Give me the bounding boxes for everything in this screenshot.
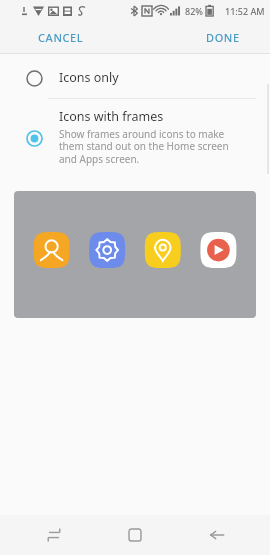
staticText: 82% [185, 5, 203, 17]
staticText: 11:52 AM [225, 5, 265, 17]
staticText: Show frames around icons to make them st… [59, 127, 229, 166]
button[interactable]: Back [189, 515, 245, 555]
button[interactable]: Icons only [0, 58, 270, 98]
button[interactable]: DONE [198, 25, 248, 50]
button[interactable]: Icons with frames [0, 99, 270, 176]
staticText: Icons only [59, 69, 119, 86]
button[interactable]: Recents [26, 515, 82, 555]
staticText: Icons with frames [59, 108, 164, 125]
staticText: DONE [206, 30, 240, 45]
button[interactable]: Home [107, 515, 163, 555]
staticText: CANCEL [38, 30, 84, 45]
button[interactable]: CANCEL [30, 25, 92, 50]
